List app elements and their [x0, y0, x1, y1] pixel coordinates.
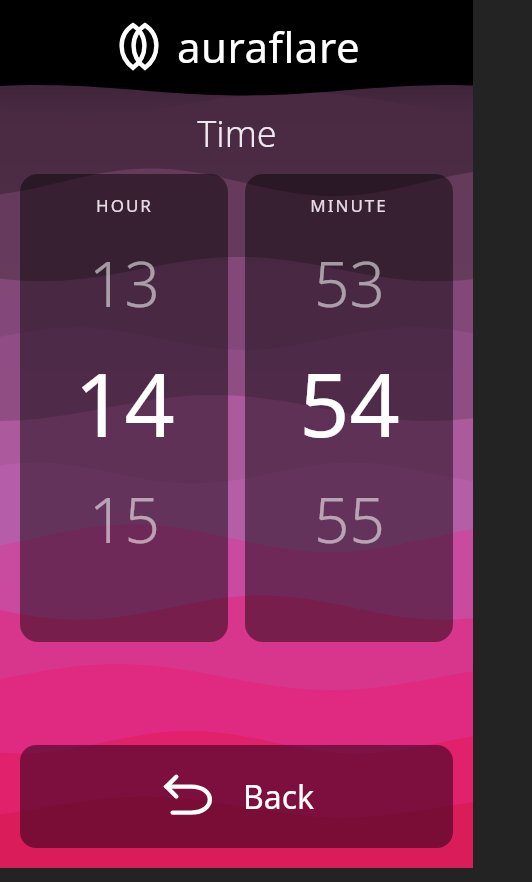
- staticText: 15: [89, 477, 160, 561]
- staticText: Time: [197, 109, 277, 158]
- staticText: 54: [299, 343, 400, 463]
- staticText: HOUR: [96, 194, 153, 217]
- button[interactable]: HOUR: [20, 174, 228, 642]
- staticText: 53: [314, 241, 385, 325]
- other: auraflare logo: [113, 20, 165, 72]
- staticText: 14: [74, 343, 175, 463]
- staticText: 13: [89, 241, 160, 325]
- staticText: Back: [243, 775, 315, 819]
- button[interactable]: MINUTE: [245, 174, 453, 642]
- button[interactable]: Back: [20, 745, 453, 848]
- staticText: MINUTE: [310, 194, 388, 217]
- staticText: 55: [314, 477, 385, 561]
- staticText: auraflare: [177, 18, 361, 75]
